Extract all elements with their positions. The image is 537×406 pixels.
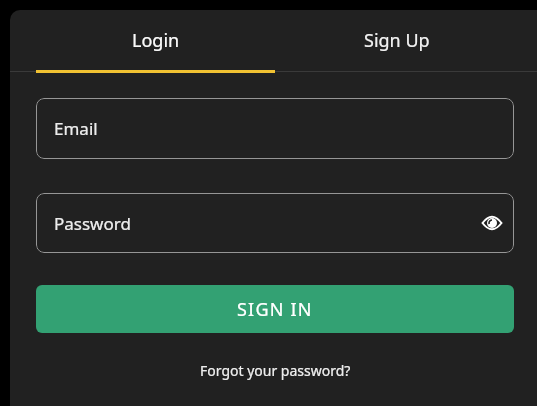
staticText: Login xyxy=(132,28,180,53)
staticText: Email xyxy=(54,117,98,140)
button[interactable] xyxy=(480,211,504,235)
button[interactable]: Sign Up xyxy=(277,10,516,70)
staticText: Forgot your password? xyxy=(200,361,351,380)
staticText: Password xyxy=(54,212,131,235)
button[interactable]: Forgot your password? xyxy=(36,357,514,384)
button[interactable]: SIGN IN xyxy=(36,285,514,333)
button[interactable]: Login xyxy=(36,10,275,70)
button[interactable]: Email xyxy=(36,98,514,159)
staticText: Sign Up xyxy=(364,28,430,53)
staticText: SIGN IN xyxy=(237,297,313,322)
button[interactable]: Password xyxy=(36,193,514,253)
